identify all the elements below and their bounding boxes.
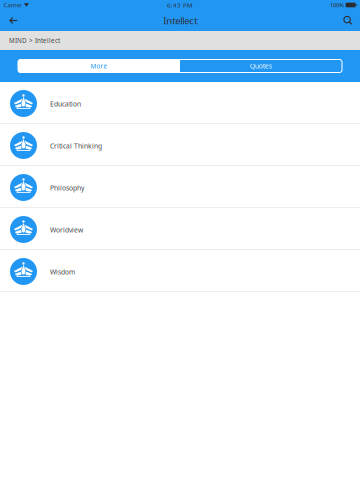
button[interactable]: Philosophy: [0, 166, 360, 208]
staticText: Education: [50, 99, 81, 109]
button[interactable]: More: [18, 59, 180, 72]
staticText: Intellect: [163, 14, 197, 27]
button[interactable]: Worldview: [0, 208, 360, 250]
staticText: Quotes: [250, 61, 272, 71]
staticText: Philosophy: [50, 183, 84, 193]
button[interactable]: Search: [335, 10, 358, 31]
staticText: 100%: [330, 1, 344, 9]
staticText: Carrier: [3, 1, 21, 9]
staticText: MIND > Intellect: [9, 36, 60, 45]
staticText: Worldview: [50, 225, 83, 235]
button[interactable]: Education: [0, 82, 360, 124]
button[interactable]: Back: [2, 10, 25, 31]
button[interactable]: Wisdom: [0, 250, 360, 292]
staticText: Wisdom: [50, 267, 75, 277]
staticText: 6:43 PM: [167, 1, 193, 9]
button[interactable]: Quotes: [180, 59, 342, 72]
staticText: More: [90, 61, 107, 71]
staticText: Critical Thinking: [50, 141, 102, 151]
button[interactable]: Critical Thinking: [0, 124, 360, 166]
